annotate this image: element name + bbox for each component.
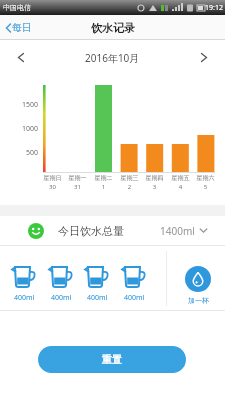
button[interactable]: 今日饮水总量 (0, 216, 225, 245)
staticText: 中国电信 (3, 3, 31, 12)
button[interactable]: 400ml (44, 263, 78, 303)
staticText: 500 (14, 148, 38, 158)
staticText: 重置 (102, 353, 122, 366)
button[interactable]: 400ml (80, 263, 114, 303)
staticText: 星期一 (67, 174, 88, 182)
button[interactable]: 400ml (7, 263, 41, 303)
staticText: 400ml (124, 293, 145, 303)
staticText: 每日 (12, 21, 32, 34)
staticText: 19:12 (205, 3, 223, 13)
staticText: 31 (67, 183, 88, 191)
button[interactable]: 重置 (38, 346, 186, 373)
staticText: 星期日 (42, 174, 63, 182)
staticText: 今日饮水总量 (58, 224, 124, 238)
button[interactable] (17, 52, 25, 63)
staticText: 饮水记录 (91, 21, 135, 35)
staticText: 星期五 (170, 174, 191, 182)
staticText: 3 (144, 183, 165, 191)
button[interactable]: 加一杯 (181, 266, 215, 305)
staticText: 2 (119, 183, 140, 191)
staticText: 2016年10月 (85, 51, 140, 65)
staticText: 星期四 (144, 174, 165, 182)
staticText: 30 (42, 183, 63, 191)
staticText: 4 (170, 183, 191, 191)
staticText: 1000 (14, 124, 38, 134)
staticText: 星期三 (119, 174, 140, 182)
staticText: 星期六 (195, 174, 216, 182)
staticText: 星期二 (93, 174, 114, 182)
button[interactable]: 400ml (117, 263, 151, 303)
button[interactable] (200, 52, 208, 63)
staticText: 加一杯 (188, 296, 209, 305)
button[interactable]: 每日 (5, 21, 32, 34)
staticText: 1400ml (160, 224, 195, 238)
staticText: 400ml (87, 293, 108, 303)
staticText: 400ml (14, 293, 35, 303)
staticText: 5 (195, 183, 216, 191)
staticText: 1500 (14, 100, 38, 110)
staticText: 400ml (51, 293, 72, 303)
staticText: 1 (93, 183, 114, 191)
